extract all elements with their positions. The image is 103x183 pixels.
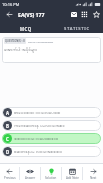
staticText: STATISTIC — [64, 26, 90, 32]
staticText: QUESTION(S) : 8 — [5, 39, 25, 43]
button[interactable]: Previous — [0, 163, 19, 183]
staticText: 10:16 PM — [2, 2, 20, 7]
button[interactable]: Answer — [20, 163, 40, 183]
staticText: Solution — [45, 176, 57, 180]
button[interactable]: Messages — [68, 8, 79, 21]
button[interactable]: Solution — [41, 163, 61, 183]
button[interactable]: Next — [83, 163, 103, 183]
staticText: ဒထဒငဝငသ လပေဒထဒငဝ — [14, 135, 59, 142]
button[interactable]: D — [2, 146, 101, 157]
button[interactable]: C — [2, 133, 101, 144]
staticText: Previous — [4, 176, 16, 180]
button[interactable]: A — [2, 107, 101, 118]
button[interactable]: QUESTION(S) : 8 — [2, 37, 101, 63]
staticText: စာပေဒထဒင ဝငသလပေဒထ — [14, 109, 61, 116]
staticText: D — [6, 149, 10, 155]
staticText: EA(VS) 177 — [18, 11, 45, 18]
staticText: B — [6, 123, 9, 129]
button[interactable]: B — [2, 120, 101, 131]
staticText: ကခဂစဆတဒန ပမလဝသအစဒ — [14, 122, 65, 129]
button[interactable]: STATISTIC — [51, 21, 103, 33]
staticText: အောက်ပါ အပိုဒ်များ — [4, 46, 38, 53]
staticText: Next — [90, 176, 97, 180]
button[interactable]: Question grid — [79, 8, 90, 21]
staticText: စဆတဒနပမ လဝသအစဒထဒ — [14, 148, 62, 155]
button[interactable]: Back — [0, 8, 18, 21]
button[interactable]: Bookmark — [90, 8, 103, 21]
staticText: A — [6, 110, 10, 116]
staticText: MCQ — [20, 26, 32, 32]
staticText: Add Note — [66, 176, 79, 180]
button[interactable]: Add Note — [62, 163, 82, 183]
staticText: Answer — [25, 176, 36, 180]
staticText: TOPIC: Fundamentals — [28, 40, 54, 43]
button[interactable]: MCQ — [0, 21, 51, 33]
staticText: C — [6, 136, 9, 142]
